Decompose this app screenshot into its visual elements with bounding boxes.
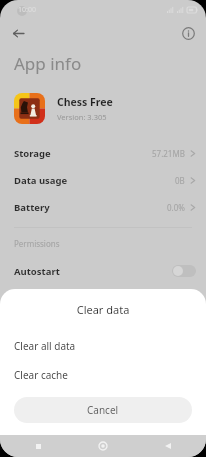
staticText: Clear data	[0, 302, 206, 317]
staticText: Chess Free	[57, 95, 113, 109]
button[interactable]: Recent apps	[28, 436, 48, 456]
button[interactable]: Cancel	[14, 397, 192, 423]
staticText: Data usage	[14, 174, 68, 187]
staticText: Clear cache	[14, 368, 68, 382]
staticText: Battery	[14, 201, 50, 214]
button[interactable]: Clear all data	[0, 331, 206, 360]
staticText: 0B	[175, 175, 185, 186]
button[interactable]: Battery	[0, 194, 206, 221]
button[interactable]: Back	[6, 21, 30, 45]
staticText: 10:00	[18, 5, 36, 15]
button[interactable]: Clear cache	[0, 360, 206, 389]
staticText: Version: 3.305	[57, 112, 107, 122]
staticText: Storage	[14, 147, 51, 160]
staticText: 0.0%	[167, 202, 185, 213]
button[interactable]: Autostart toggle	[172, 265, 196, 277]
button[interactable]: Autostart	[0, 259, 206, 283]
button[interactable]: Back	[158, 436, 178, 456]
staticText: 57.21MB	[152, 148, 185, 159]
staticText: Permissions	[14, 238, 60, 249]
button[interactable]: App details	[176, 21, 200, 45]
staticText: Clear all data	[14, 339, 76, 353]
button[interactable]: Storage	[0, 140, 206, 167]
staticText: Autostart	[14, 265, 60, 278]
button[interactable]: Home	[93, 436, 113, 456]
button[interactable]: Data usage	[0, 167, 206, 194]
staticText: Cancel	[87, 403, 119, 417]
staticText: App info	[14, 52, 82, 75]
button[interactable]: Chess Free	[0, 91, 206, 126]
